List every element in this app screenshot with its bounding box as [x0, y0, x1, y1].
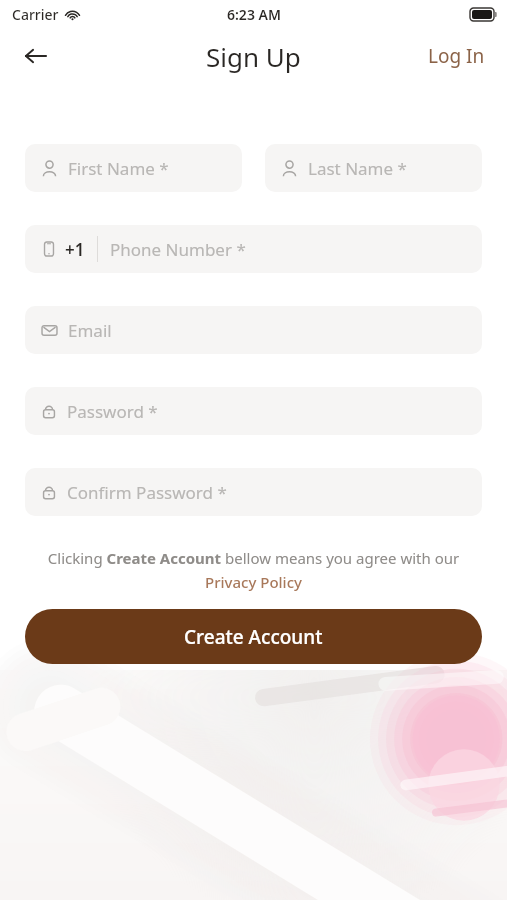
staticText: Sign Up: [206, 39, 301, 74]
staticText: Clicking Create Account bellow means you…: [34, 548, 473, 592]
button[interactable]: Back: [14, 34, 58, 78]
staticText: Last Name *: [308, 157, 407, 180]
button[interactable]: First Name *: [25, 144, 242, 192]
staticText: Password *: [67, 400, 158, 423]
button[interactable]: Last Name *: [265, 144, 482, 192]
staticText: Phone Number *: [110, 238, 246, 261]
staticText: First Name *: [68, 157, 169, 180]
button[interactable]: Confirm Password *: [25, 468, 482, 516]
staticText: Carrier: [12, 5, 59, 24]
button[interactable]: Email: [25, 306, 482, 354]
staticText: Create Account: [184, 624, 323, 650]
staticText: 6:23 AM: [227, 5, 281, 24]
staticText: Email: [68, 319, 112, 342]
staticText: +1: [65, 238, 85, 261]
button[interactable]: Password *: [25, 387, 482, 435]
button[interactable]: Create Account: [25, 609, 482, 664]
staticText: Confirm Password *: [67, 481, 227, 504]
button[interactable]: +1: [25, 225, 482, 273]
staticText: Log In: [428, 43, 485, 69]
button[interactable]: Log In: [424, 37, 489, 75]
